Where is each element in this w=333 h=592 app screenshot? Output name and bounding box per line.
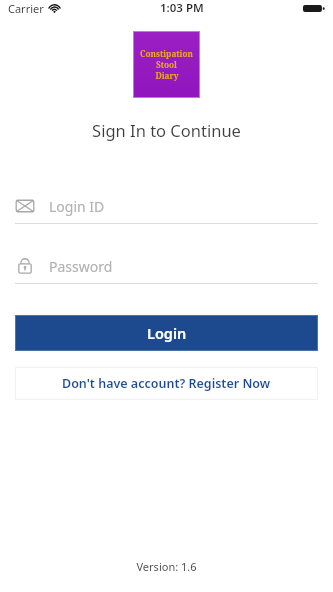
button[interactable]: Don't have account? Register Now [15,367,318,400]
staticText: Constipation [140,48,193,59]
staticText: Version: 1.6 [0,559,333,574]
button[interactable]: Password field [15,253,318,284]
staticText: Stool [156,59,177,70]
staticText: Password [49,257,113,276]
staticText: Login ID [49,197,105,216]
button[interactable]: Login ID field [15,193,318,224]
staticText: Carrier [8,1,44,16]
button[interactable]: Login [15,315,318,351]
staticText: Diary [155,70,179,81]
staticText: Don't have account? Register Now [62,375,271,392]
staticText: 1:03 PM [160,0,204,16]
staticText: Login [147,323,187,343]
staticText: Sign In to Continue [0,119,333,141]
